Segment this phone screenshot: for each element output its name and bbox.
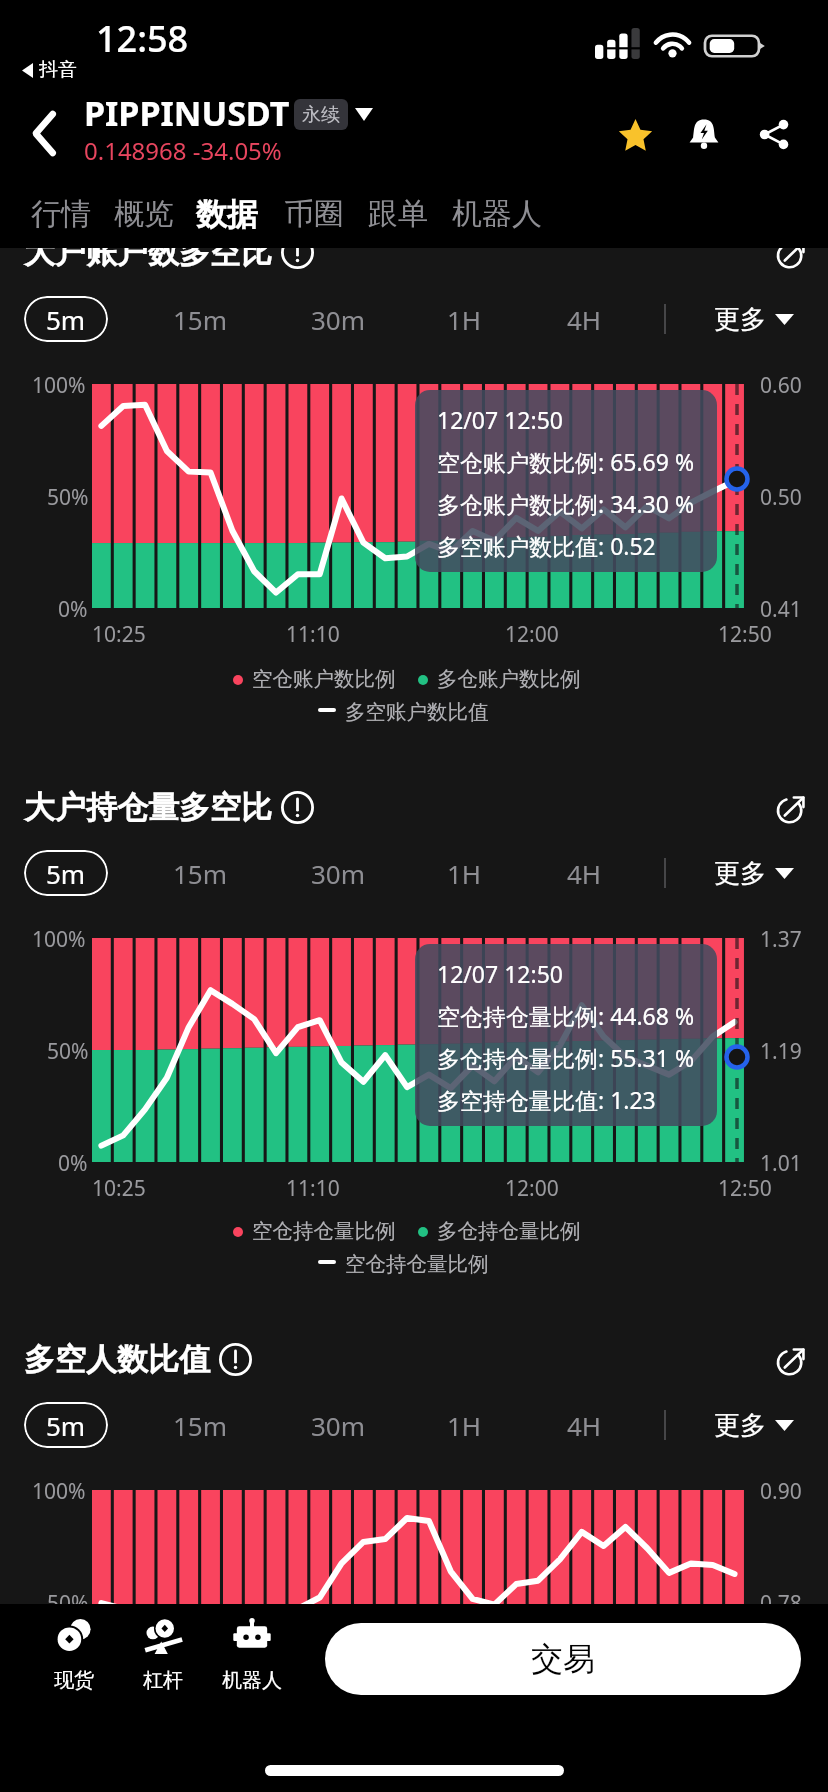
- staticText: 多仓账户数比例: 34.30 %: [437, 488, 695, 519]
- staticText: 1H: [447, 302, 482, 337]
- button[interactable]: 现货: [29, 1617, 119, 1693]
- staticText: 11:10: [286, 1174, 340, 1203]
- button[interactable]: 30m: [288, 296, 388, 342]
- staticText: 多仓持仓量比例: 55.31 %: [437, 1042, 695, 1073]
- staticText: 0.78: [760, 1589, 802, 1618]
- button[interactable]: 1H: [424, 296, 504, 342]
- staticText: 数据: [196, 195, 258, 234]
- staticText: 跟单: [368, 195, 428, 233]
- button[interactable]: 15m: [150, 296, 250, 342]
- staticText: 10:25: [92, 1174, 146, 1203]
- staticText: 1.01: [760, 1149, 802, 1178]
- button[interactable]: 30m: [288, 850, 388, 896]
- staticText: 100%: [32, 925, 86, 954]
- button[interactable]: 更多: [714, 850, 794, 896]
- staticText: 15m: [173, 302, 228, 337]
- staticText: 4H: [567, 856, 602, 891]
- staticText: 多空持仓量比值: 1.23: [437, 1084, 656, 1115]
- button[interactable]: Open full chart: [767, 1336, 815, 1384]
- staticText: 更多: [714, 303, 766, 336]
- button[interactable]: 5m: [24, 1402, 108, 1448]
- staticText: 50%: [47, 483, 89, 512]
- button[interactable]: 更多: [714, 296, 794, 342]
- staticText: PIPPINUSDT: [84, 90, 290, 136]
- staticText: 0%: [58, 595, 88, 624]
- staticText: 12:00: [505, 1174, 559, 1203]
- staticText: 15m: [173, 856, 228, 891]
- button[interactable]: Back: [16, 105, 72, 161]
- staticText: 15m: [173, 1408, 228, 1443]
- staticText: 0%: [58, 1149, 88, 1178]
- staticText: 更多: [714, 1409, 766, 1442]
- button[interactable]: Open full chart: [767, 784, 815, 832]
- staticText: 12/07 12:50: [437, 958, 563, 989]
- button[interactable]: 更多: [714, 1402, 794, 1448]
- button[interactable]: Price alert: [677, 106, 731, 160]
- staticText: 空仓持仓量比例: 44.68 %: [437, 1000, 695, 1031]
- staticText: 1.37: [760, 925, 802, 954]
- button[interactable]: Favorite: [608, 108, 662, 162]
- button[interactable]: 1H: [424, 850, 504, 896]
- staticText: 多空人数比值: [24, 1340, 210, 1379]
- staticText: 空仓持仓量比例: [252, 1218, 396, 1244]
- staticText: 大户账户数多空比: [24, 233, 272, 272]
- button[interactable]: 4H: [544, 296, 624, 342]
- staticText: 现货: [54, 1668, 94, 1693]
- staticText: 大户持仓量多空比: [24, 788, 272, 827]
- button[interactable]: 5m: [24, 850, 108, 896]
- button[interactable]: 机器人: [442, 185, 552, 243]
- button[interactable]: 30m: [288, 1402, 388, 1448]
- button[interactable]: 杠杆: [118, 1617, 208, 1693]
- button[interactable]: 行情: [21, 185, 101, 243]
- button[interactable]: 币圈: [274, 185, 354, 243]
- staticText: 30m: [311, 856, 366, 891]
- button[interactable]: 交易: [325, 1623, 801, 1695]
- staticText: 10:25: [92, 620, 146, 649]
- button[interactable]: 数据: [186, 185, 268, 244]
- staticText: 1H: [447, 1408, 482, 1443]
- staticText: 币圈: [284, 195, 344, 233]
- button[interactable]: Share: [747, 107, 801, 161]
- staticText: 空仓账户数比例: 65.69 %: [437, 446, 695, 477]
- staticText: 0.148968 -34.05%: [84, 134, 282, 167]
- staticText: 50%: [47, 1589, 89, 1618]
- staticText: 空仓账户数比例: [252, 666, 396, 692]
- button[interactable]: 跟单: [358, 185, 438, 243]
- button[interactable]: 1H: [424, 1402, 504, 1448]
- button[interactable]: 4H: [544, 850, 624, 896]
- staticText: 行情: [31, 195, 91, 233]
- staticText: 多空账户数比值: [345, 699, 489, 725]
- staticText: 多仓持仓量比例: [437, 1218, 581, 1244]
- staticText: 100%: [32, 371, 86, 400]
- staticText: 5m: [46, 856, 86, 891]
- staticText: 30m: [311, 1408, 366, 1443]
- button[interactable]: 机器人: [207, 1617, 297, 1693]
- button[interactable]: 15m: [150, 1402, 250, 1448]
- button[interactable]: 5m: [24, 296, 108, 342]
- button[interactable]: 4H: [544, 1402, 624, 1448]
- button[interactable]: 15m: [150, 850, 250, 896]
- staticText: 5m: [46, 1408, 86, 1443]
- staticText: 多仓账户数比例: [437, 666, 581, 692]
- staticText: 抖音: [39, 58, 77, 82]
- staticText: 0.90: [760, 1477, 802, 1506]
- staticText: 多空账户数比值: 0.52: [437, 530, 656, 561]
- staticText: 更多: [714, 857, 766, 890]
- staticText: 1H: [447, 856, 482, 891]
- staticText: 0.50: [760, 483, 802, 512]
- staticText: 空仓持仓量比例: [345, 1251, 489, 1277]
- staticText: 机器人: [452, 195, 542, 233]
- button[interactable]: 概览: [104, 185, 184, 243]
- staticText: 12:00: [505, 620, 559, 649]
- staticText: 机器人: [222, 1668, 282, 1693]
- staticText: 交易: [531, 1639, 595, 1679]
- staticText: 4H: [567, 302, 602, 337]
- staticText: 12/07 12:50: [437, 404, 563, 435]
- staticText: 12:50: [718, 620, 772, 649]
- staticText: 概览: [114, 195, 174, 233]
- staticText: 11:10: [286, 620, 340, 649]
- staticText: 永续: [302, 103, 340, 127]
- button[interactable]: Open full chart: [767, 229, 815, 277]
- staticText: 100%: [32, 1477, 86, 1506]
- staticText: 1.19: [760, 1037, 802, 1066]
